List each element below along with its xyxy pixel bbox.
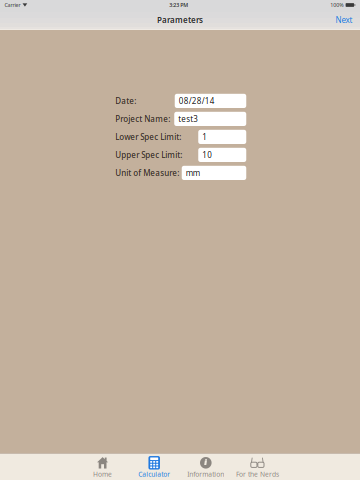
button[interactable]: Home <box>77 453 128 480</box>
button[interactable]: Information <box>180 453 232 480</box>
staticText: mm <box>186 168 200 178</box>
staticText: test3 <box>178 114 198 124</box>
staticText: Home <box>93 470 112 479</box>
staticText: Information <box>187 470 224 479</box>
staticText: Upper Spec Limit: <box>115 150 182 160</box>
staticText: 1 <box>202 132 207 142</box>
button[interactable]: 10 <box>198 148 246 162</box>
staticText: Calculator <box>138 470 170 479</box>
button[interactable]: 1 <box>198 130 246 144</box>
staticText: 3:23 PM <box>169 1 188 9</box>
staticText: For the Nerds <box>236 470 279 479</box>
staticText: Date: <box>115 96 136 106</box>
staticText: Carrier <box>4 1 20 9</box>
button[interactable]: test3 <box>174 112 246 126</box>
button[interactable]: 08/28/14 <box>175 94 246 108</box>
staticText: Project Name: <box>115 114 170 124</box>
staticText: Unit of Measure: <box>115 168 179 178</box>
button[interactable]: mm <box>182 166 246 180</box>
staticText: Parameters <box>157 15 203 25</box>
staticText: Next <box>335 15 352 25</box>
staticText: Lower Spec Limit: <box>115 132 181 142</box>
staticText: 08/28/14 <box>179 96 215 106</box>
button[interactable]: For the Nerds <box>232 453 283 480</box>
staticText: 10 <box>202 150 212 160</box>
button[interactable]: Next <box>328 11 360 29</box>
button[interactable]: Calculator <box>128 453 180 480</box>
staticText: 100% <box>330 1 343 9</box>
